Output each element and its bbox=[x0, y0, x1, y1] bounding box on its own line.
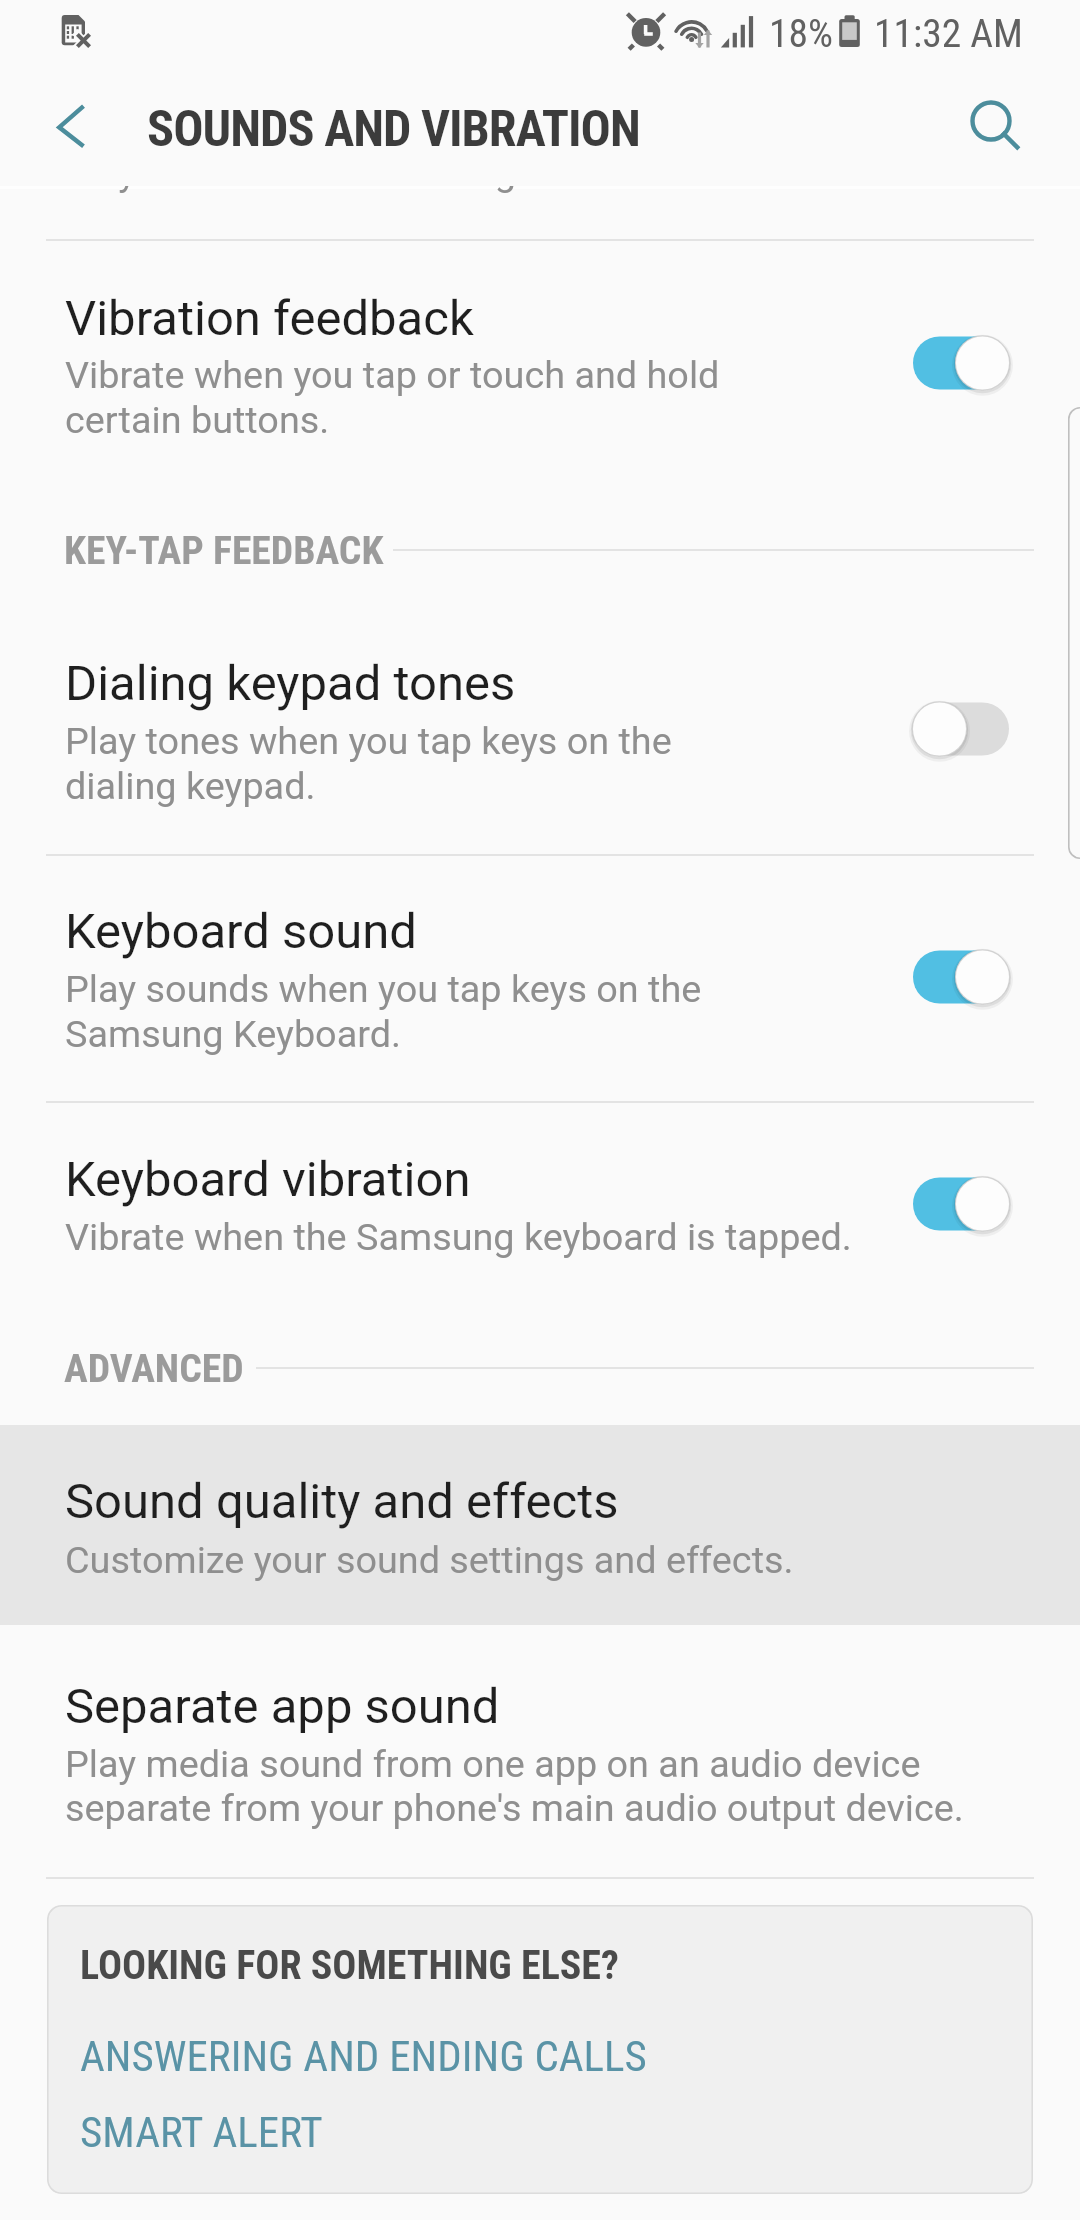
button[interactable]: Toggle on bbox=[899, 933, 1023, 1021]
staticText: ADVANCED bbox=[64, 1345, 244, 1392]
button[interactable]: SMART ALERT bbox=[62, 2103, 362, 2165]
staticText: Play tones when you tap keys on the bbox=[65, 719, 672, 763]
button[interactable]: Vibration feedback bbox=[0, 240, 1080, 468]
staticText: 11:32 AM bbox=[874, 10, 1023, 56]
staticText: Keyboard vibration bbox=[65, 1151, 471, 1208]
button[interactable]: Search bbox=[958, 88, 1026, 156]
button[interactable]: ANSWERING AND ENDING CALLS bbox=[62, 2026, 682, 2088]
staticText: SOUNDS AND VIBRATION bbox=[147, 99, 640, 158]
staticText: Vibrate when the Samsung keyboard is tap… bbox=[65, 1215, 852, 1259]
staticText: separate from your phone's main audio ou… bbox=[65, 1786, 964, 1830]
staticText: dialing keypad. bbox=[65, 764, 316, 808]
staticText: 18% bbox=[769, 10, 833, 56]
button[interactable]: Sound quality and effects bbox=[0, 1425, 1080, 1625]
staticText: Separate app sound bbox=[65, 1678, 500, 1735]
button[interactable]: Separate app sound bbox=[0, 1626, 1080, 1876]
staticText: Customize your sound settings and effect… bbox=[65, 1538, 794, 1582]
button[interactable]: Keyboard vibration bbox=[0, 1102, 1080, 1302]
staticText: LOOKING FOR SOMETHING ELSE? bbox=[80, 1942, 619, 1989]
staticText: Sound quality and effects bbox=[65, 1473, 619, 1530]
staticText: certain buttons. bbox=[65, 398, 330, 442]
staticText: Vibrate when you tap or touch and hold bbox=[65, 353, 720, 397]
staticText: KEY-TAP FEEDBACK bbox=[64, 527, 384, 574]
staticText: Play sounds when you tap keys on the bbox=[65, 967, 702, 1011]
staticText: Dialing keypad tones bbox=[65, 655, 516, 712]
button[interactable]: Keyboard sound bbox=[0, 855, 1080, 1101]
button[interactable]: Toggle on bbox=[899, 1160, 1023, 1248]
staticText: SMART ALERT bbox=[80, 2107, 323, 2157]
staticText: ANSWERING AND ENDING CALLS bbox=[80, 2031, 647, 2081]
staticText: Vibration feedback bbox=[65, 290, 474, 347]
staticText: Keyboard sound bbox=[65, 903, 417, 960]
staticText: Play media sound from one app on an audi… bbox=[65, 1742, 921, 1786]
button[interactable]: Back bbox=[30, 88, 112, 164]
staticText: Samsung Keyboard. bbox=[65, 1012, 401, 1056]
button[interactable]: Toggle on bbox=[899, 319, 1023, 407]
staticText: Play sound when the charger is connected… bbox=[65, 186, 783, 194]
button[interactable]: Toggle off bbox=[899, 685, 1023, 773]
button[interactable]: Dialing keypad tones bbox=[0, 620, 1080, 854]
